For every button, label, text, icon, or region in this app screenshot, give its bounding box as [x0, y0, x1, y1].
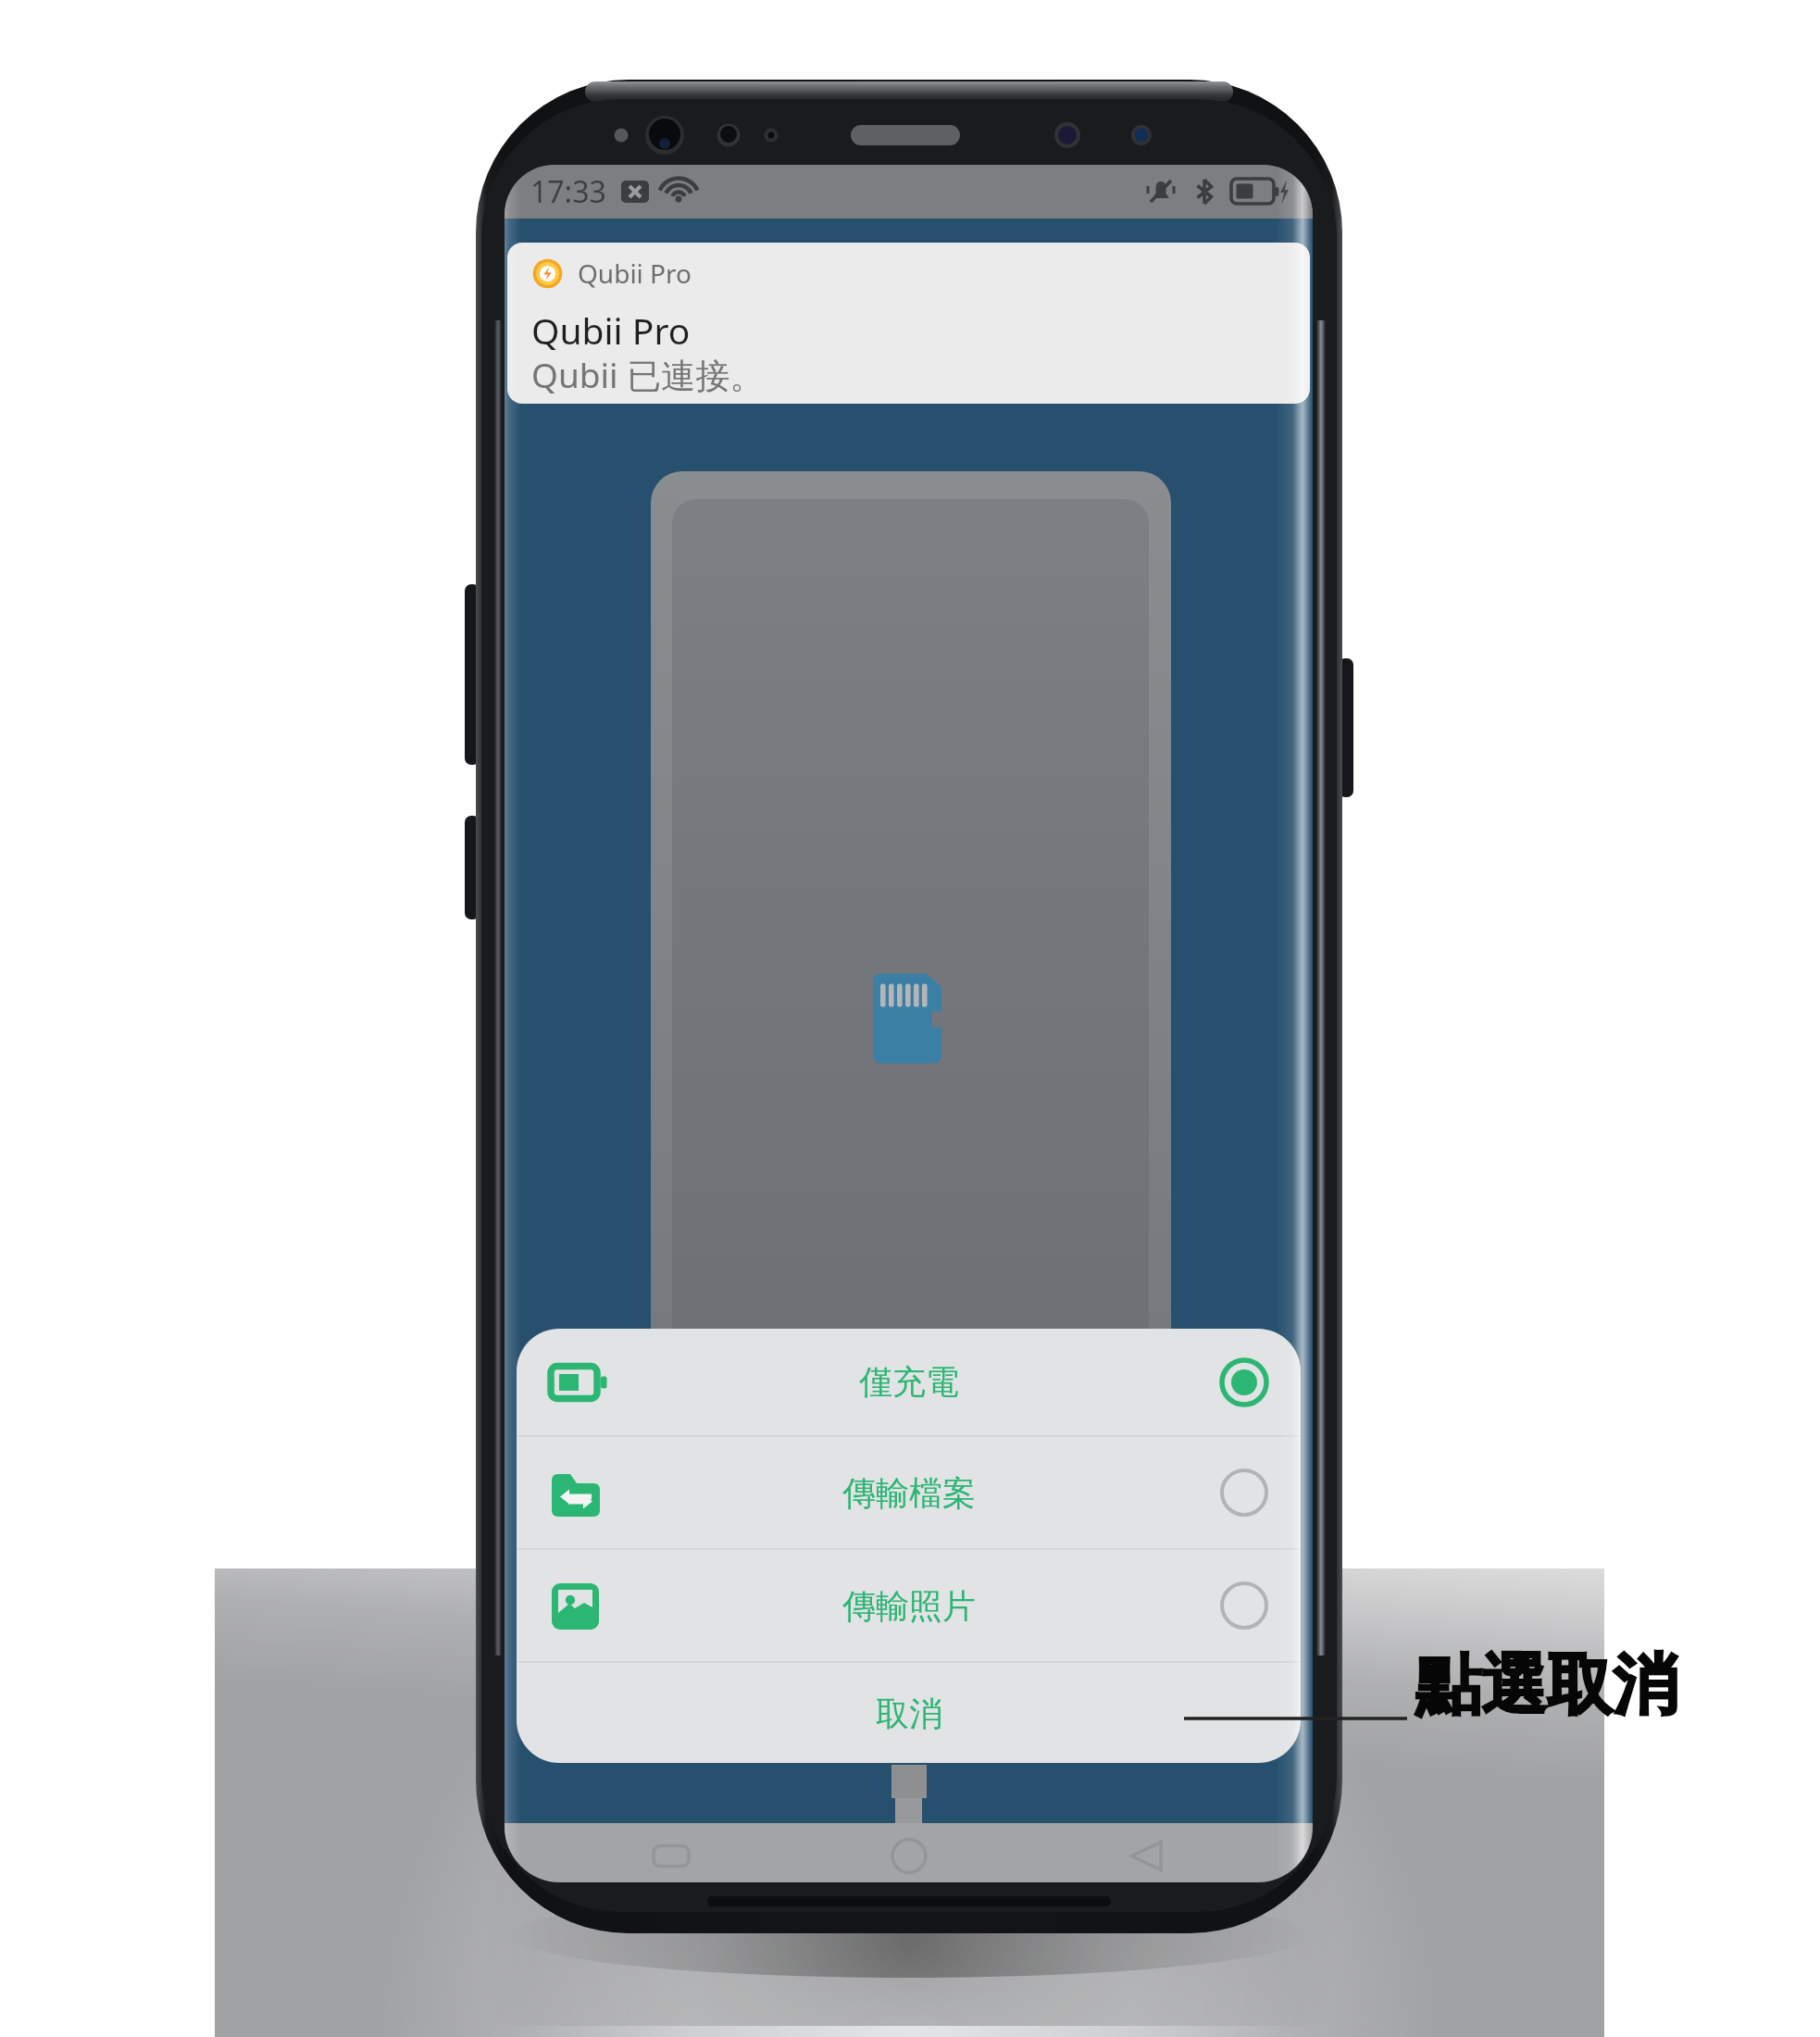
staticText: 17:33: [530, 171, 606, 212]
button[interactable]: 取消: [517, 1663, 1301, 1763]
button[interactable]: Home: [790, 1823, 1028, 1882]
staticText: 點選取消: [1415, 1644, 1678, 1727]
staticText: 傳輸照片: [842, 1585, 976, 1627]
staticText: 取消: [876, 1693, 942, 1734]
button[interactable]: 傳輸檔案: [517, 1437, 1301, 1548]
button[interactable]: Recent apps: [552, 1823, 790, 1882]
button[interactable]: Back: [1028, 1823, 1265, 1882]
staticText: Qubii Pro: [578, 256, 692, 291]
staticText: 傳輸檔案: [842, 1472, 976, 1514]
staticText: 僅充電: [859, 1361, 959, 1403]
button[interactable]: Qubii Pro: [507, 243, 1310, 404]
button[interactable]: 傳輸照片: [517, 1550, 1301, 1661]
button[interactable]: 僅充電: [517, 1329, 1301, 1435]
staticText: Qubii 已連接。: [531, 351, 765, 398]
staticText: Qubii Pro: [531, 306, 691, 355]
